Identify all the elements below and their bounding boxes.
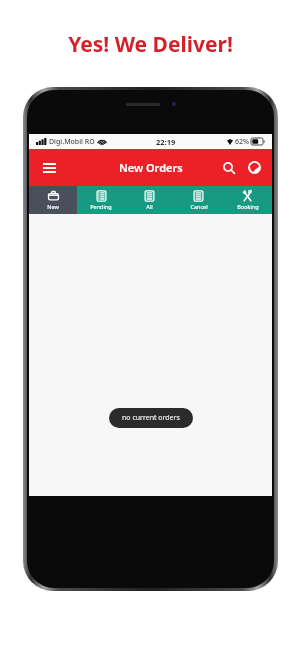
staticText: Yes! We Deliver! — [68, 30, 233, 59]
button[interactable]: Language — [244, 157, 265, 178]
button[interactable]: Pending — [77, 186, 125, 214]
button[interactable]: Booking — [223, 186, 272, 214]
staticText: no current orders — [122, 413, 180, 423]
staticText: All — [146, 203, 153, 210]
button[interactable]: Search — [218, 157, 239, 178]
staticText: 22:19 — [156, 137, 176, 147]
staticText: Cancel — [190, 203, 208, 210]
button[interactable]: Cancel — [174, 186, 223, 214]
button[interactable]: New — [29, 186, 77, 214]
staticText: Pending — [90, 203, 112, 210]
button[interactable]: Open menu — [38, 157, 60, 179]
staticText: Booking — [237, 203, 259, 210]
staticText: New — [47, 203, 59, 210]
staticText: 62% — [235, 137, 249, 147]
staticText: Digi.Mobil RO — [49, 137, 95, 147]
staticText: New Orders — [119, 160, 183, 175]
button[interactable]: All — [125, 186, 174, 214]
